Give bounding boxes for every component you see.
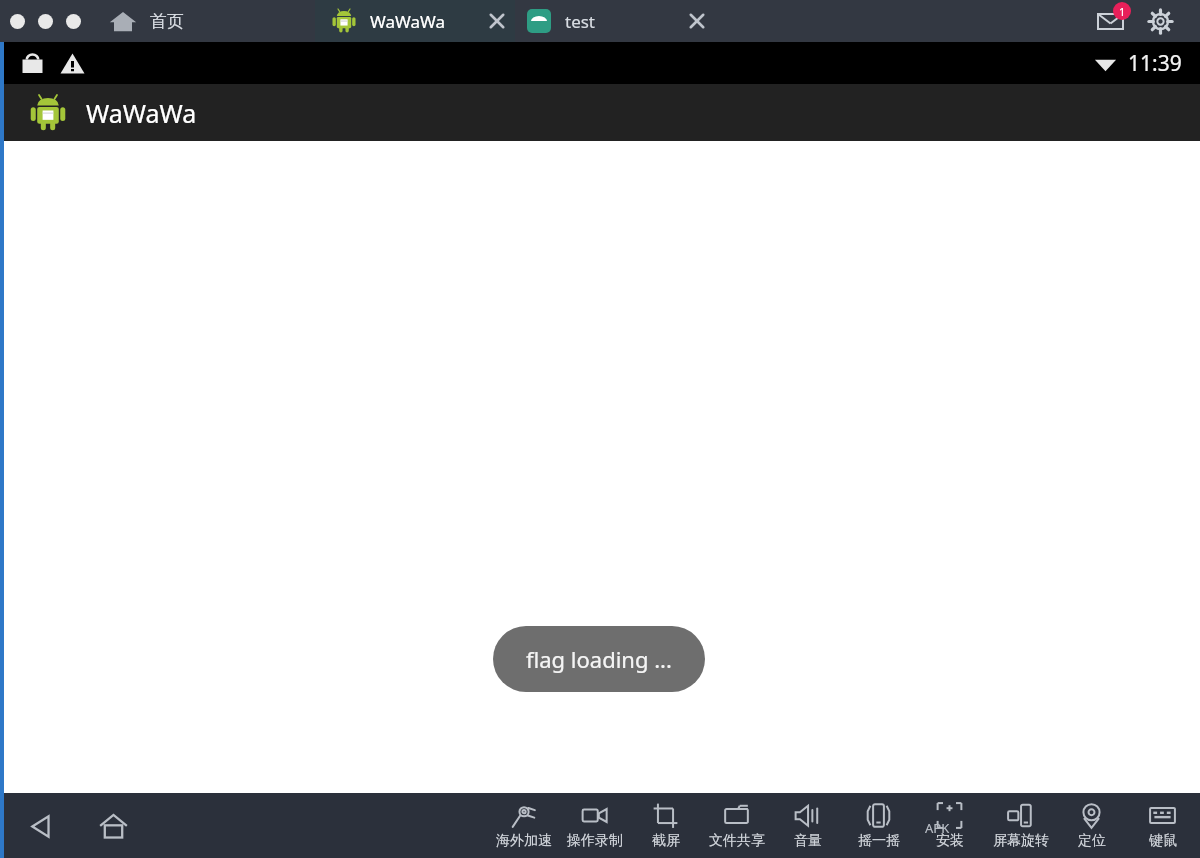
button[interactable]: flag loading ... (493, 626, 705, 692)
staticText: 屏幕旋转 (993, 832, 1049, 850)
button[interactable]: File sharing (701, 793, 772, 858)
button[interactable]: Keyboard and mouse (1127, 793, 1198, 858)
staticText: 定位 (1078, 832, 1106, 850)
staticText: 音量 (794, 832, 822, 850)
button[interactable]: Screenshot (630, 793, 701, 858)
staticText: 首页 (150, 11, 184, 32)
button[interactable]: Home (90, 803, 136, 849)
staticText: WaWaWa (86, 96, 197, 130)
button[interactable]: Messages (1092, 3, 1128, 39)
staticText: flag loading ... (526, 644, 672, 674)
button[interactable]: 首页 (100, 0, 192, 42)
staticText: APK (925, 819, 950, 837)
button[interactable]: Settings (1142, 3, 1178, 39)
staticText: WaWaWa (370, 10, 446, 33)
button[interactable]: Record operations (559, 793, 630, 858)
button[interactable]: Overseas acceleration (488, 793, 559, 858)
button[interactable]: Close test tab (684, 8, 710, 34)
button[interactable]: Rotate screen (985, 793, 1056, 858)
staticText: 安装 (936, 832, 964, 850)
button[interactable]: test (527, 0, 687, 42)
staticText: 1 (1119, 4, 1126, 19)
button[interactable]: Back (18, 803, 64, 849)
button[interactable]: Location (1056, 793, 1127, 858)
staticText: 海外加速 (496, 832, 552, 850)
button[interactable]: Install APK (914, 793, 985, 858)
button[interactable]: Close WaWaWa tab (484, 8, 510, 34)
staticText: 截屏 (652, 832, 680, 850)
button[interactable]: Volume (772, 793, 843, 858)
staticText: 操作录制 (567, 832, 623, 850)
staticText: 摇一摇 (858, 832, 900, 850)
button[interactable]: WaWaWa (315, 0, 515, 42)
staticText: 键鼠 (1149, 832, 1177, 850)
staticText: test (565, 10, 596, 33)
button[interactable]: Shake (843, 793, 914, 858)
staticText: 文件共享 (709, 832, 765, 850)
staticText: 11:39 (1128, 49, 1182, 78)
